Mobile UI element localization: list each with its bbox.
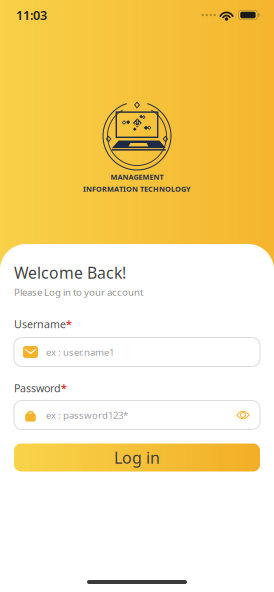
staticText: Please Log in to your account — [14, 285, 143, 298]
staticText: Username — [14, 317, 66, 331]
staticText: Password — [14, 381, 61, 395]
staticText: 11:03 — [16, 6, 47, 24]
staticText: MANAGEMENT — [110, 172, 163, 182]
staticText: ex : password123* — [46, 408, 128, 422]
staticText: Log in — [114, 447, 160, 468]
staticText: * — [61, 381, 67, 395]
staticText: Welcome Back! — [14, 262, 126, 283]
staticText: * — [66, 317, 72, 331]
button[interactable]: Log in — [14, 443, 260, 471]
staticText: INFORMATION TECHNOLOGY — [83, 184, 191, 194]
staticText: ex : user.name1 — [46, 345, 114, 359]
